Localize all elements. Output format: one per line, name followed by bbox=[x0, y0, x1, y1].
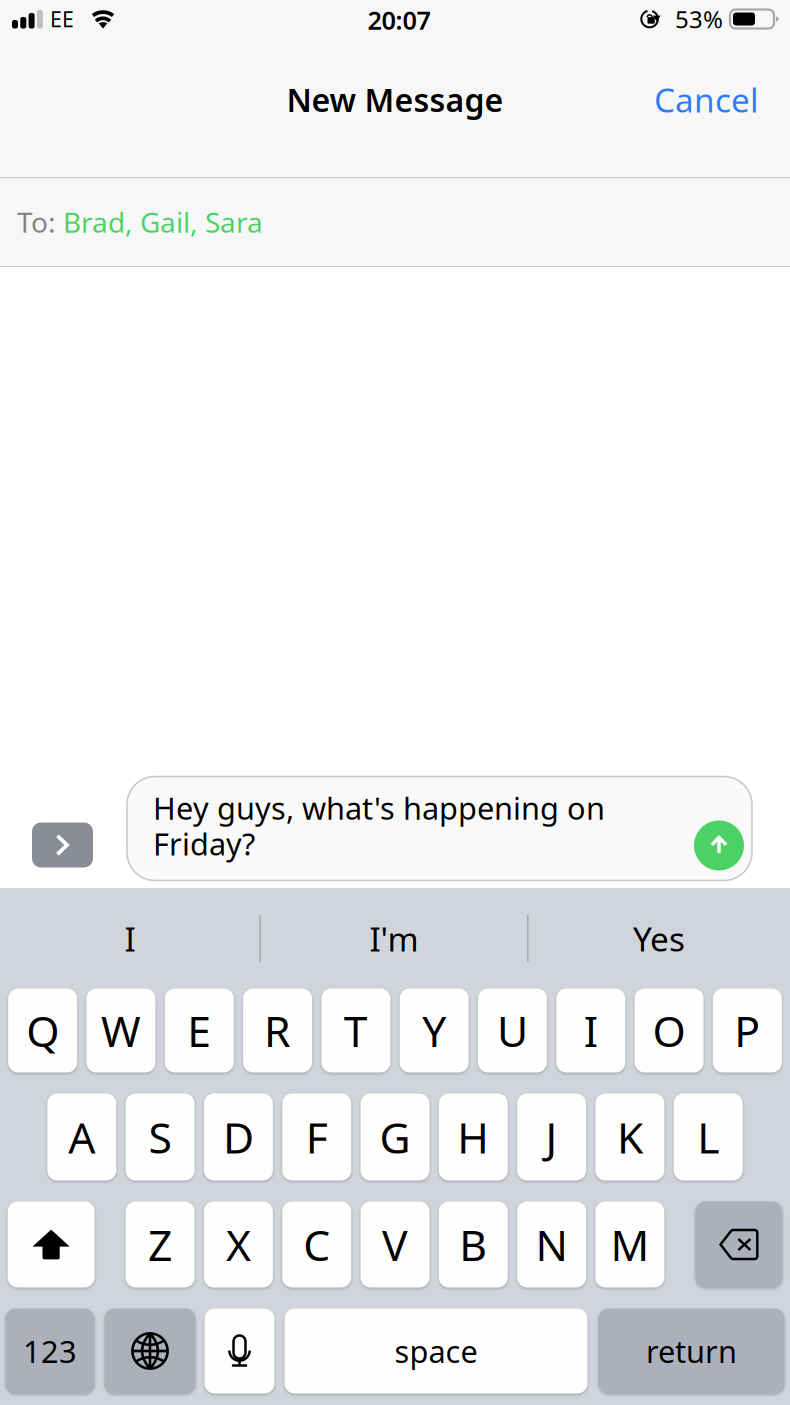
staticText: O bbox=[652, 1002, 685, 1059]
staticText: T bbox=[344, 1002, 368, 1059]
staticText: V bbox=[382, 1216, 408, 1273]
button[interactable]: S bbox=[126, 1093, 195, 1180]
button[interactable]: X bbox=[204, 1201, 273, 1287]
button[interactable]: 123 bbox=[5, 1308, 94, 1393]
button[interactable]: I bbox=[0, 888, 259, 988]
staticText: 20:07 bbox=[367, 3, 430, 37]
button[interactable]: V bbox=[360, 1201, 429, 1287]
staticText: E bbox=[187, 1002, 211, 1059]
staticText: 53% bbox=[675, 3, 723, 35]
staticText: F bbox=[306, 1109, 328, 1165]
button[interactable]: Next keyboard bbox=[104, 1308, 195, 1393]
button[interactable]: J bbox=[517, 1093, 586, 1180]
staticText: X bbox=[226, 1216, 251, 1273]
button[interactable]: R bbox=[243, 988, 312, 1072]
button[interactable]: Yes bbox=[529, 888, 790, 988]
staticText: G bbox=[379, 1109, 410, 1165]
button[interactable]: Q bbox=[8, 988, 77, 1072]
staticText: W bbox=[101, 1002, 141, 1059]
staticText: Q bbox=[26, 1002, 59, 1059]
button[interactable]: I'm bbox=[261, 888, 527, 988]
button[interactable]: Y bbox=[400, 988, 469, 1072]
staticText: EE bbox=[50, 5, 74, 33]
button[interactable]: U bbox=[478, 988, 547, 1072]
button[interactable]: M bbox=[595, 1201, 664, 1287]
staticText: D bbox=[223, 1109, 254, 1165]
button[interactable]: C bbox=[282, 1201, 351, 1287]
staticText: Z bbox=[148, 1216, 172, 1273]
staticText: I'm bbox=[369, 916, 418, 961]
button[interactable]: Shift bbox=[8, 1201, 95, 1287]
button[interactable]: B bbox=[439, 1201, 508, 1287]
staticText: N bbox=[536, 1216, 568, 1273]
button[interactable]: P bbox=[713, 988, 782, 1072]
staticText: Hey guys, what's happening on Friday? bbox=[153, 787, 605, 864]
staticText: I bbox=[124, 916, 135, 961]
button[interactable]: F bbox=[282, 1093, 351, 1180]
staticText: Yes bbox=[633, 916, 685, 961]
button[interactable]: K bbox=[595, 1093, 664, 1180]
button[interactable]: Delete bbox=[695, 1201, 782, 1287]
staticText: Y bbox=[422, 1002, 446, 1059]
staticText: Cancel bbox=[654, 77, 759, 122]
button[interactable]: E bbox=[165, 988, 234, 1072]
button[interactable]: W bbox=[86, 988, 155, 1072]
button[interactable]: O bbox=[634, 988, 703, 1072]
button[interactable]: D bbox=[204, 1093, 273, 1180]
button[interactable]: A bbox=[47, 1093, 116, 1180]
staticText: H bbox=[457, 1109, 489, 1165]
button[interactable]: T bbox=[321, 988, 390, 1072]
staticText: J bbox=[546, 1109, 558, 1165]
staticText: P bbox=[734, 1002, 760, 1059]
staticText: R bbox=[264, 1002, 291, 1059]
staticText: L bbox=[697, 1109, 719, 1165]
button[interactable]: N bbox=[517, 1201, 586, 1287]
button[interactable]: return bbox=[598, 1308, 784, 1393]
button[interactable]: G bbox=[360, 1093, 429, 1180]
staticText: K bbox=[617, 1109, 643, 1165]
button[interactable]: Dictate bbox=[204, 1308, 274, 1393]
staticText: M bbox=[610, 1216, 649, 1273]
button[interactable]: Cancel bbox=[638, 69, 775, 152]
staticText: B bbox=[459, 1216, 487, 1273]
button[interactable]: Send bbox=[694, 820, 744, 870]
staticText: C bbox=[303, 1216, 330, 1273]
button[interactable]: Expand bbox=[32, 822, 93, 867]
button[interactable]: I bbox=[556, 988, 625, 1072]
staticText: 123 bbox=[23, 1331, 77, 1371]
button[interactable]: Z bbox=[126, 1201, 195, 1287]
staticText: A bbox=[68, 1109, 95, 1165]
staticText: return bbox=[646, 1331, 737, 1371]
staticText: Brad, Gail, Sara bbox=[63, 203, 263, 241]
staticText: space bbox=[394, 1331, 477, 1371]
button[interactable]: space bbox=[284, 1308, 587, 1393]
staticText: New Message bbox=[286, 78, 503, 121]
staticText: I bbox=[584, 1002, 598, 1059]
staticText: U bbox=[497, 1002, 528, 1059]
staticText: S bbox=[149, 1109, 172, 1165]
button[interactable]: H bbox=[439, 1093, 508, 1180]
staticText: To: bbox=[17, 203, 63, 241]
button[interactable]: L bbox=[674, 1093, 743, 1180]
